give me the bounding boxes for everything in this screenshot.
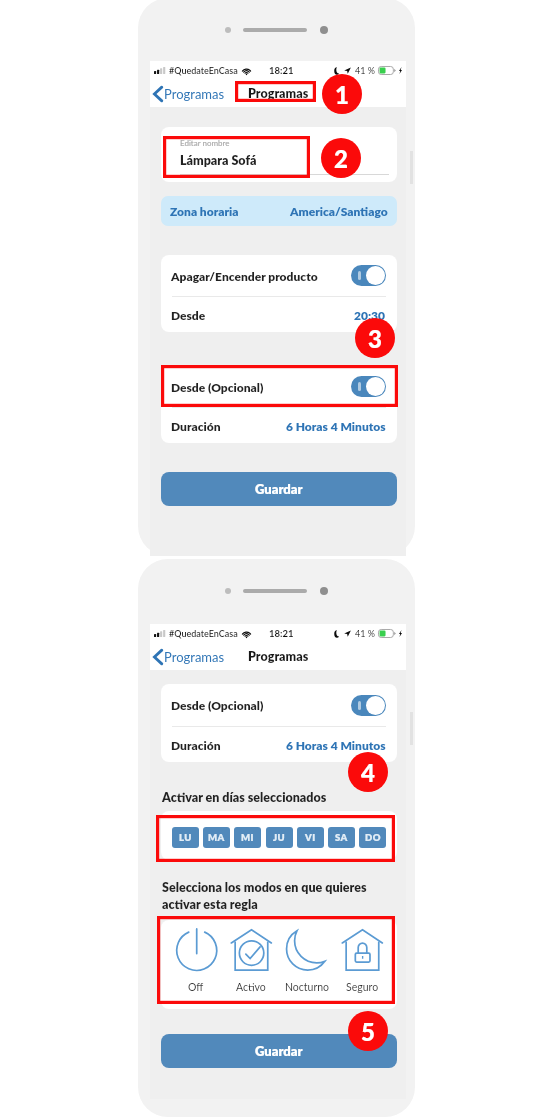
button[interactable]: Guardar <box>161 472 397 506</box>
staticText: 3 <box>368 324 382 353</box>
button[interactable]: JU <box>266 827 293 848</box>
staticText: Desde (Opcional) <box>171 698 264 712</box>
button[interactable]: Guardar <box>161 1034 397 1068</box>
button[interactable]: Activar <box>351 695 386 716</box>
button[interactable]: DO <box>359 827 386 848</box>
staticText: Duración <box>171 419 221 433</box>
staticText: 5 <box>361 1017 375 1046</box>
button[interactable]: Seguro <box>335 928 389 994</box>
staticText: 6 Horas 4 Minutos <box>286 738 386 752</box>
button[interactable]: Activar <box>351 265 386 286</box>
staticText: VI <box>305 832 316 843</box>
button[interactable]: Off <box>169 928 223 994</box>
staticText: Guardar <box>255 481 303 497</box>
button[interactable]: LU <box>172 827 199 848</box>
button[interactable]: Activar <box>351 376 386 397</box>
staticText: 18:21 <box>269 628 294 639</box>
staticText: #QuedateEnCasa <box>169 65 238 76</box>
staticText: 1 <box>335 80 349 109</box>
staticText: 20:30 <box>354 308 386 322</box>
staticText: MA <box>208 832 225 843</box>
button[interactable]: MI <box>234 827 261 848</box>
staticText: Programas <box>164 86 225 102</box>
button[interactable]: Desde (Opcional) <box>161 366 397 407</box>
staticText: Apagar/Encender producto <box>171 269 318 283</box>
staticText: Lámpara Sofá <box>180 153 257 168</box>
staticText: 18:21 <box>269 65 294 76</box>
staticText: JU <box>273 832 286 843</box>
other: Back <box>153 86 163 102</box>
staticText: activar esta regla <box>162 897 258 912</box>
staticText: SA <box>335 832 348 843</box>
staticText: 4 <box>361 758 375 787</box>
button[interactable]: Nocturno <box>280 928 334 994</box>
staticText: Selecciona los modos en que quieres <box>162 880 367 895</box>
button[interactable]: Desde (Opcional) <box>161 684 397 726</box>
button[interactable]: Back <box>150 83 229 105</box>
staticText: #QuedateEnCasa <box>169 628 238 639</box>
button[interactable]: Back <box>150 646 229 668</box>
staticText: Desde <box>171 308 206 322</box>
button[interactable]: Duración <box>161 408 397 443</box>
staticText: 6 Horas 4 Minutos <box>286 419 386 433</box>
staticText: Zona horaria <box>170 204 239 218</box>
staticText: Programas <box>248 86 309 101</box>
button[interactable]: Zona horaria <box>161 196 397 226</box>
staticText: DO <box>365 832 381 843</box>
staticText: Seguro <box>346 981 379 994</box>
staticText: 41 % <box>355 628 375 639</box>
button[interactable]: MA <box>203 827 230 848</box>
staticText: Programas <box>164 649 225 665</box>
button[interactable]: Desde <box>161 297 397 332</box>
staticText: LU <box>179 832 192 843</box>
staticText: Off <box>188 981 204 994</box>
button[interactable]: VI <box>297 827 324 848</box>
button[interactable]: Apagar/Encender producto <box>161 255 397 296</box>
button[interactable]: Duración <box>161 727 397 762</box>
staticText: Desde (Opcional) <box>171 380 264 394</box>
staticText: 41 % <box>355 65 375 76</box>
staticText: Guardar <box>255 1043 303 1059</box>
staticText: Programas <box>248 649 309 664</box>
staticText: Duración <box>171 738 221 752</box>
staticText: Activar en días seleccionados <box>162 790 327 805</box>
staticText: America/Santiago <box>290 204 388 218</box>
button[interactable]: Activo <box>224 928 278 994</box>
button[interactable]: SA <box>328 827 355 848</box>
other: Back <box>153 649 163 665</box>
staticText: Activo <box>236 981 266 994</box>
staticText: Editar nombre <box>180 138 230 148</box>
staticText: Nocturno <box>285 981 330 994</box>
staticText: 2 <box>334 144 348 173</box>
staticText: MI <box>241 832 254 843</box>
